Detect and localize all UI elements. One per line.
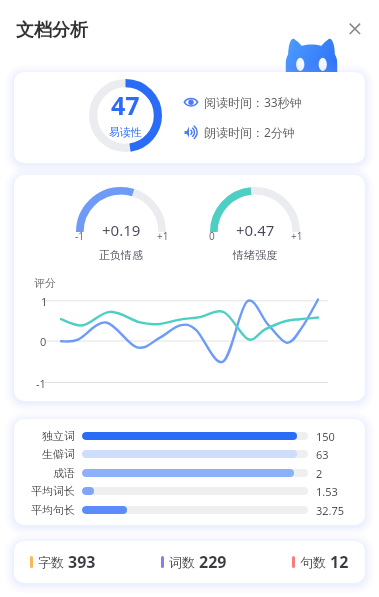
- staticText: +1: [157, 229, 169, 243]
- staticText: 易读性: [109, 125, 142, 139]
- staticText: 150: [316, 429, 335, 444]
- staticText: 情绪强度: [233, 248, 277, 262]
- staticText: 句数: [300, 554, 326, 570]
- staticText: 字数: [38, 554, 64, 570]
- staticText: 2: [316, 466, 323, 481]
- staticText: 平均句长: [31, 503, 75, 517]
- staticText: 词数: [169, 554, 195, 570]
- staticText: 阅读时间：33秒钟: [204, 94, 302, 110]
- staticText: 32.75: [316, 503, 345, 518]
- staticText: 393: [68, 551, 96, 573]
- staticText: 12: [330, 551, 349, 573]
- button[interactable]: Close: [341, 15, 369, 43]
- staticText: 0: [40, 334, 47, 349]
- staticText: 229: [199, 551, 227, 573]
- staticText: 生僻词: [42, 447, 75, 461]
- staticText: +0.47: [236, 220, 275, 240]
- staticText: +1: [291, 229, 303, 243]
- staticText: 1: [41, 294, 48, 309]
- staticText: -1: [36, 376, 46, 391]
- staticText: +0.19: [102, 220, 141, 240]
- staticText: 正负情感: [99, 248, 143, 262]
- staticText: 文档分析: [16, 19, 88, 42]
- staticText: 1.53: [316, 484, 338, 499]
- staticText: 独立词: [42, 429, 75, 443]
- staticText: 63: [316, 447, 329, 462]
- staticText: 成语: [53, 466, 75, 480]
- staticText: 平均词长: [31, 484, 75, 498]
- staticText: 0: [209, 229, 215, 243]
- staticText: 47: [111, 88, 140, 122]
- staticText: -1: [75, 229, 84, 243]
- staticText: 朗读时间：2分钟: [204, 124, 295, 140]
- staticText: 评分: [34, 276, 56, 290]
